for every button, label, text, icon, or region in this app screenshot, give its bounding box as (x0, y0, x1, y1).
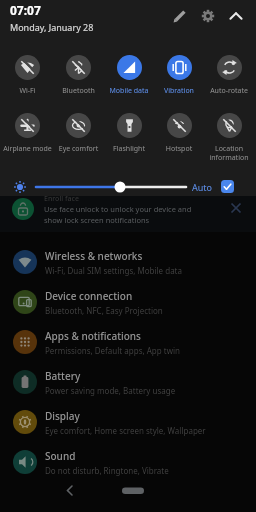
button[interactable] (66, 113, 91, 138)
button[interactable]: Wireless & networks (0, 242, 256, 282)
staticText: Monday, January 28 (10, 21, 94, 33)
button[interactable]: Battery (0, 362, 256, 402)
button[interactable]: Device connection (0, 282, 256, 322)
staticText: Bluetooth (53, 86, 104, 96)
button[interactable] (117, 113, 142, 138)
staticText: Display (45, 409, 80, 423)
button[interactable]: Apps & notifications (0, 322, 256, 362)
staticText: Mobile data (104, 86, 154, 96)
button[interactable] (167, 113, 192, 138)
staticText: Bluetooth, NFC, Easy Projection (45, 305, 163, 316)
button[interactable]: Sound (0, 442, 256, 482)
button[interactable] (58, 478, 82, 502)
button[interactable] (66, 55, 91, 80)
staticText: Auto (192, 181, 213, 193)
staticText: Use face unlock to unlock your device an… (44, 204, 192, 214)
staticText: Apps & notifications (45, 329, 141, 343)
button[interactable] (221, 180, 234, 193)
staticText: show lock screen notifications (44, 215, 150, 225)
button[interactable] (200, 8, 216, 24)
staticText: Hotspot (154, 144, 204, 154)
staticText: Flashlight (104, 144, 154, 154)
button[interactable]: Display (0, 402, 256, 442)
staticText: Wireless & networks (45, 249, 143, 263)
staticText: Sound (45, 449, 76, 463)
button[interactable] (117, 55, 142, 80)
staticText: Do not disturb, Ringtone, Vibrate (45, 465, 169, 476)
button[interactable] (116, 478, 150, 502)
staticText: Eye comfort (53, 144, 104, 154)
staticText: Eye comfort, Home screen style, Wallpape… (45, 425, 206, 436)
staticText: Battery (45, 369, 81, 383)
button[interactable] (228, 200, 244, 216)
button[interactable] (15, 55, 40, 80)
button[interactable] (15, 113, 40, 138)
button[interactable] (228, 8, 244, 24)
staticText: Device connection (45, 289, 133, 303)
button[interactable] (217, 113, 242, 138)
staticText: Enroll face (44, 194, 79, 204)
staticText: Power saving mode, Battery usage (45, 385, 176, 396)
button[interactable] (167, 55, 192, 80)
staticText: Airplane mode (2, 144, 53, 154)
staticText: 07:07 (10, 2, 41, 18)
button[interactable] (172, 8, 188, 24)
staticText: Vibration (154, 86, 204, 96)
staticText: Auto-rotate (204, 86, 254, 96)
button[interactable] (217, 55, 242, 80)
staticText: Location information (204, 144, 254, 162)
staticText: Permissions, Default apps, App twin (45, 345, 180, 356)
staticText: Wi-Fi (2, 86, 53, 96)
staticText: Wi-Fi, Dual SIM settings, Mobile data (45, 265, 182, 276)
